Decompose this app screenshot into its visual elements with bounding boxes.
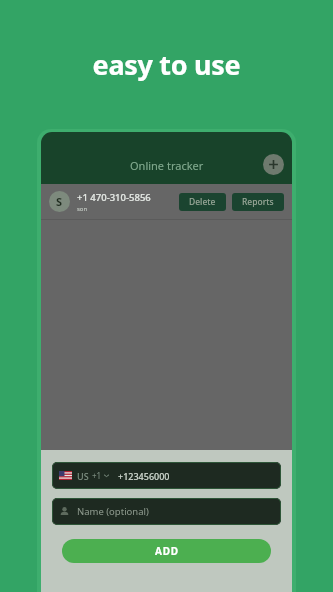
staticText: +1 <box>92 470 102 481</box>
staticText: S <box>56 194 63 209</box>
button[interactable]: US <box>52 462 281 489</box>
button[interactable]: Name (optional) <box>52 498 281 525</box>
staticText: US <box>77 470 89 482</box>
button[interactable]: Add contact <box>263 154 284 175</box>
staticText: easy to use <box>0 46 333 83</box>
staticText: ADD <box>155 544 179 558</box>
button[interactable]: S <box>41 184 292 219</box>
staticText: +1 470-310-5856 <box>77 191 151 204</box>
staticText: +123456000 <box>118 470 170 482</box>
button[interactable]: ADD <box>62 539 271 563</box>
button[interactable]: Delete <box>179 193 226 211</box>
staticText: Delete <box>189 196 216 208</box>
button[interactable]: Reports <box>232 193 284 211</box>
staticText: Online tracker <box>130 158 204 173</box>
staticText: Name (optional) <box>77 505 149 518</box>
staticText: Reports <box>242 196 274 208</box>
staticText: son <box>77 205 88 213</box>
